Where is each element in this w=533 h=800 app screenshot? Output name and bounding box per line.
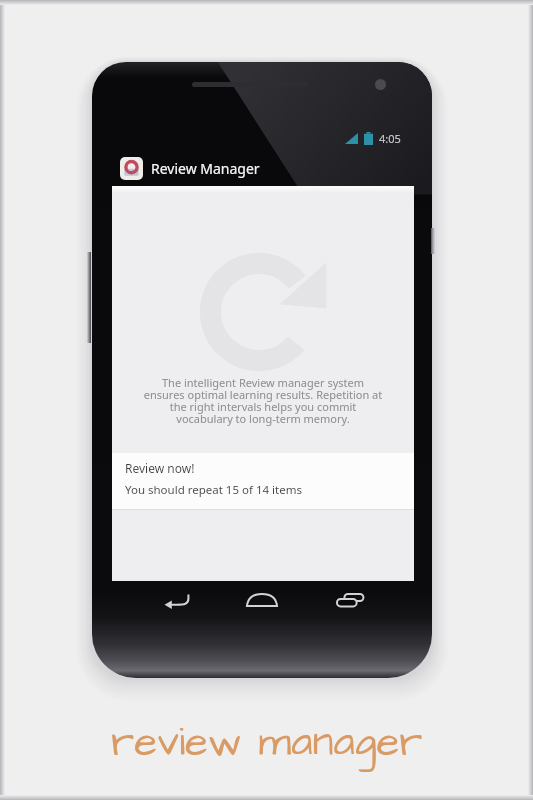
staticText: Review Manager bbox=[151, 159, 260, 178]
staticText: The intelligent Review manager system en… bbox=[128, 375, 398, 426]
staticText: Review now! bbox=[125, 460, 195, 476]
button[interactable]: Back bbox=[160, 583, 194, 617]
staticText: You should repeat 15 of 14 items bbox=[125, 482, 302, 498]
button[interactable]: Review Manager bbox=[120, 157, 260, 180]
button[interactable]: Recent apps bbox=[333, 583, 367, 617]
staticText: 4:05 bbox=[379, 131, 401, 146]
button[interactable]: Review now! bbox=[112, 453, 414, 509]
staticText: review manager bbox=[111, 714, 423, 772]
button[interactable]: Home bbox=[245, 583, 279, 617]
